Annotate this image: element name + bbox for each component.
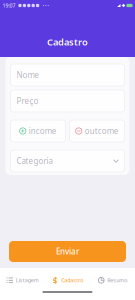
button[interactable]: Enviar — [9, 241, 126, 262]
staticText: Preço — [16, 96, 38, 106]
staticText: Cadastro — [47, 36, 88, 48]
button[interactable]: Nome — [10, 64, 124, 86]
button[interactable]: Listagem — [0, 274, 45, 286]
button[interactable]: outcome — [69, 120, 124, 142]
staticText: Categoria — [16, 156, 52, 166]
staticText: Cadastro — [61, 277, 83, 284]
staticText: income — [29, 126, 57, 136]
button[interactable]: income — [10, 120, 65, 142]
button[interactable]: Resumo — [90, 274, 135, 286]
staticText: Resumo — [107, 277, 127, 284]
staticText: outcome — [85, 126, 119, 136]
staticText: Enviar — [56, 246, 79, 257]
staticText: Nome — [16, 70, 39, 80]
button[interactable]: Cadastro — [45, 274, 90, 286]
staticText: 19:07 — [2, 2, 15, 9]
button[interactable]: Preço — [10, 90, 124, 112]
button[interactable]: Categoria — [10, 150, 124, 172]
staticText: Listagem — [16, 277, 39, 284]
